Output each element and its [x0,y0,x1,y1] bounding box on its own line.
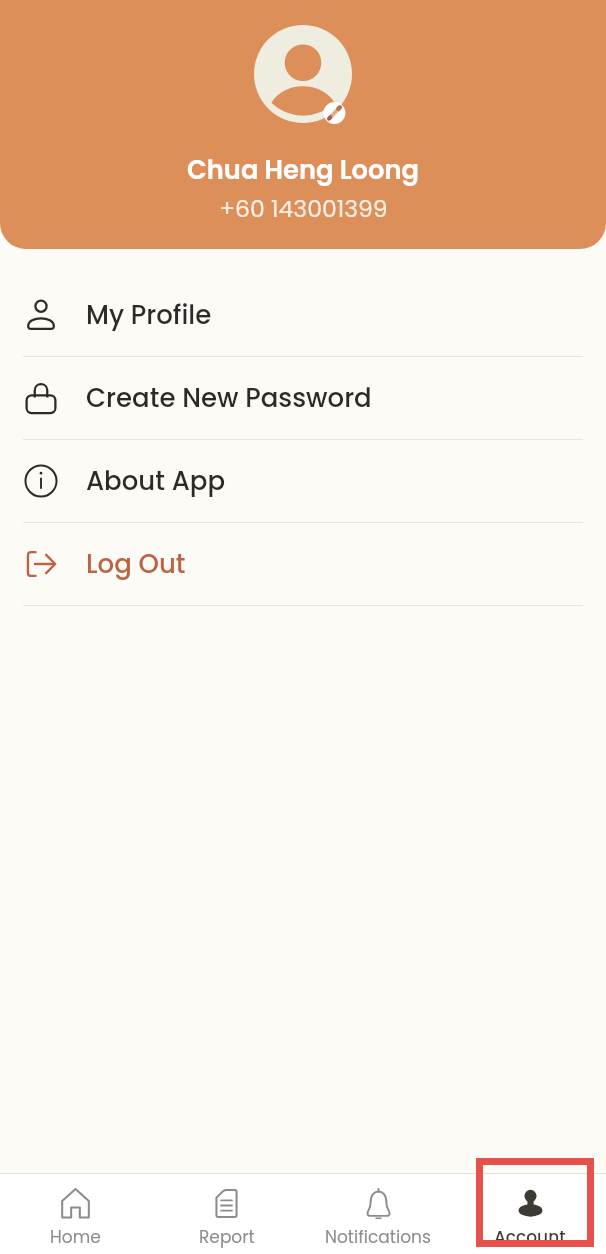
staticText: Notifications [325,1225,431,1249]
staticText: Create New Password [86,380,372,416]
staticText: Log Out [86,546,186,582]
staticText: About App [86,463,226,499]
staticText: Chua Heng Loong [187,152,419,188]
staticText: Account [494,1225,566,1249]
button[interactable]: Log Out [0,523,606,605]
button[interactable]: Account [454,1174,606,1254]
button[interactable]: Notifications [302,1174,454,1254]
button[interactable]: Report [151,1174,302,1254]
button[interactable]: My Profile [0,274,606,356]
staticText: My Profile [86,297,212,333]
staticText: +60 143001399 [219,192,388,225]
staticText: Report [199,1225,255,1249]
button[interactable]: Create New Password [0,357,606,439]
staticText: Home [50,1225,101,1249]
button[interactable]: About App [0,440,606,522]
button[interactable]: Home [0,1174,151,1254]
button[interactable]: Edit profile picture [254,25,352,123]
